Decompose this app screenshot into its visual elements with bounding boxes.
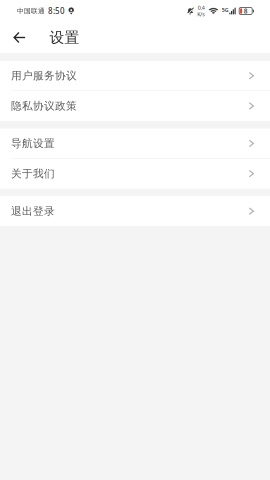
button[interactable]: 隐私协议政策 bbox=[0, 91, 270, 121]
staticText: 退出登录 bbox=[11, 205, 55, 218]
button[interactable]: 关于我们 bbox=[0, 159, 270, 188]
staticText: 隐私协议政策 bbox=[11, 99, 77, 112]
staticText: 8:50 bbox=[48, 6, 65, 16]
staticText: 5G bbox=[222, 6, 229, 14]
staticText: 用户服务协议 bbox=[11, 69, 77, 82]
staticText: 0.4 bbox=[198, 4, 205, 11]
button[interactable]: 导航设置 bbox=[0, 129, 270, 158]
staticText: 关于我们 bbox=[11, 167, 55, 180]
button[interactable]: Back bbox=[6, 22, 32, 53]
button[interactable]: 用户服务协议 bbox=[0, 61, 270, 90]
staticText: 中国联通 bbox=[17, 7, 45, 15]
staticText: K/s bbox=[197, 11, 205, 18]
staticText: 设置 bbox=[49, 28, 79, 46]
staticText: 导航设置 bbox=[11, 137, 55, 150]
staticText: 8 bbox=[244, 7, 248, 15]
button[interactable]: 退出登录 bbox=[0, 196, 270, 226]
